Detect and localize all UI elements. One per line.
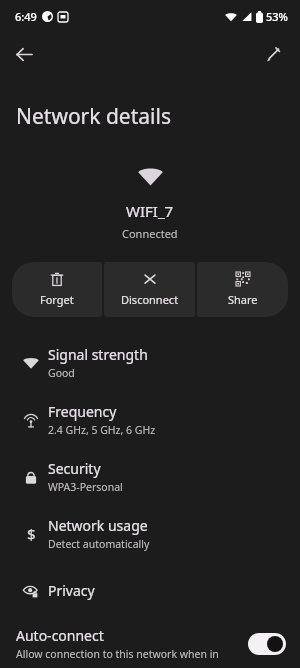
staticText: Auto-connect <box>16 626 104 645</box>
button[interactable]: Frequency <box>0 391 300 448</box>
button[interactable]: Auto-connect toggle <box>248 633 286 655</box>
staticText: WPA3-Personal <box>48 480 123 494</box>
button[interactable]: Share <box>197 262 288 317</box>
button[interactable]: Forget <box>12 262 102 317</box>
staticText: $ <box>27 524 36 544</box>
button[interactable]: Disconnect <box>104 262 195 317</box>
staticText: Forget <box>40 292 74 307</box>
button[interactable]: Signal strength <box>0 334 300 391</box>
button[interactable]: Security <box>0 448 300 505</box>
staticText: Privacy <box>48 581 95 600</box>
staticText: Network details <box>16 102 171 131</box>
staticText: Security <box>48 459 101 478</box>
staticText: Connected <box>122 226 178 241</box>
staticText: Frequency <box>48 402 117 421</box>
button[interactable]: Back <box>5 35 43 73</box>
staticText: 2.4 GHz, 5 GHz, 6 GHz <box>48 423 156 437</box>
staticText: Good <box>48 366 75 380</box>
staticText: Detect automatically <box>48 537 150 551</box>
staticText: 53% <box>266 9 288 24</box>
button[interactable]: $ <box>0 505 300 562</box>
staticText: Disconnect <box>121 292 179 307</box>
staticText: Share <box>228 292 258 307</box>
button[interactable]: Privacy <box>0 562 300 619</box>
staticText: Network usage <box>48 516 148 535</box>
button[interactable]: Edit <box>254 35 292 73</box>
staticText: 6:49 <box>15 9 37 24</box>
staticText: WIFI_7 <box>126 201 174 221</box>
staticText: Signal strength <box>48 345 148 364</box>
staticText: Allow connection to this network when in <box>16 647 219 661</box>
button[interactable]: Auto-connect <box>0 619 300 668</box>
